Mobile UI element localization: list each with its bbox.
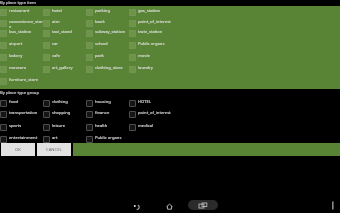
staticText: art <box>52 135 58 141</box>
staticText: entertainment <box>9 135 38 141</box>
staticText: airport <box>9 41 23 47</box>
button[interactable]: art_gallery <box>43 65 86 77</box>
staticText: taxi_stand <box>52 29 72 35</box>
staticText: bakery <box>9 53 23 59</box>
staticText: restaurant <box>9 8 30 14</box>
button[interactable]: health <box>86 123 129 135</box>
staticText: OK <box>15 147 21 153</box>
staticText: art_gallery <box>52 65 73 71</box>
staticText: gas_station <box>138 8 161 14</box>
staticText: health <box>95 123 108 129</box>
staticText: car <box>52 41 59 47</box>
button[interactable]: subway_station <box>86 29 129 41</box>
button[interactable]: Home <box>161 198 177 213</box>
staticText: housing <box>95 99 111 105</box>
button[interactable]: hotel <box>43 8 86 19</box>
button[interactable]: OK <box>1 143 35 156</box>
button[interactable]: finance <box>86 110 129 123</box>
button[interactable]: sports <box>0 123 43 135</box>
button[interactable]: point_of_interest <box>129 19 172 29</box>
button[interactable]: clothing <box>43 99 86 110</box>
staticText: parking <box>95 8 110 14</box>
staticText: point_of_interest <box>138 110 171 116</box>
button[interactable]: bank <box>86 19 129 29</box>
button[interactable]: movie <box>129 53 172 65</box>
staticText: train_station <box>138 29 163 35</box>
button[interactable]: Public organs <box>86 135 129 143</box>
button[interactable]: housing <box>86 99 129 110</box>
button[interactable]: entertainment <box>0 135 43 143</box>
staticText: cafe <box>52 53 61 59</box>
staticText: medical <box>138 123 154 129</box>
button[interactable]: HOTEL <box>129 99 172 110</box>
button[interactable]: car <box>43 41 86 53</box>
button[interactable]: clothing_store <box>86 65 129 77</box>
staticText: CANCEL <box>46 147 62 153</box>
staticText: bank <box>95 19 105 25</box>
staticText: convenience_store <box>9 19 43 29</box>
staticText: point_of_interest <box>138 19 171 25</box>
staticText: hotel <box>52 8 62 14</box>
staticText: leisure <box>52 123 65 129</box>
staticText: By place type item <box>0 0 36 6</box>
button[interactable]: transportation <box>0 110 43 123</box>
button[interactable]: Recent apps <box>188 200 218 210</box>
button[interactable]: furniture_store <box>0 77 43 88</box>
staticText: atm <box>52 19 60 25</box>
staticText: clothing <box>52 99 68 105</box>
staticText: By place type group <box>0 90 40 96</box>
button[interactable]: laundry <box>129 65 172 77</box>
staticText: park <box>95 53 104 59</box>
button[interactable]: bus_station <box>0 29 43 41</box>
staticText: school <box>95 41 108 47</box>
button[interactable]: point_of_interest <box>129 110 172 123</box>
button[interactable]: Back <box>128 198 144 213</box>
staticText: finance <box>95 110 110 116</box>
button[interactable]: school <box>86 41 129 53</box>
button[interactable]: bakery <box>0 53 43 65</box>
button[interactable]: shopping <box>43 110 86 123</box>
staticText: bus_station <box>9 29 32 35</box>
button[interactable]: museum <box>0 65 43 77</box>
staticText: museum <box>9 65 27 71</box>
button[interactable]: CANCEL <box>37 143 71 156</box>
button[interactable]: restaurant <box>0 8 43 19</box>
staticText: HOTEL <box>138 99 151 105</box>
button[interactable]: airport <box>0 41 43 53</box>
button[interactable]: leisure <box>43 123 86 135</box>
staticText: laundry <box>138 65 153 71</box>
button[interactable]: medical <box>129 123 172 135</box>
staticText: subway_station <box>95 29 125 35</box>
button[interactable]: cafe <box>43 53 86 65</box>
staticText: Public organs <box>138 41 165 47</box>
staticText: food <box>9 99 18 105</box>
button[interactable]: gas_station <box>129 8 172 19</box>
staticText: movie <box>138 53 150 59</box>
staticText: Public organs <box>95 135 122 141</box>
staticText: sports <box>9 123 22 129</box>
button[interactable]: park <box>86 53 129 65</box>
button[interactable]: art <box>43 135 86 143</box>
button[interactable]: atm <box>43 19 86 29</box>
button[interactable]: parking <box>86 8 129 19</box>
staticText: furniture_store <box>9 77 39 83</box>
button[interactable]: train_station <box>129 29 172 41</box>
button[interactable]: taxi_stand <box>43 29 86 41</box>
other: Keyboard indicator <box>331 201 335 210</box>
staticText: transportation <box>9 110 38 116</box>
staticText: shopping <box>52 110 71 116</box>
button[interactable]: convenience_store <box>0 19 43 29</box>
button[interactable]: food <box>0 99 43 110</box>
button[interactable]: Public organs <box>129 41 172 53</box>
staticText: clothing_store <box>95 65 123 71</box>
